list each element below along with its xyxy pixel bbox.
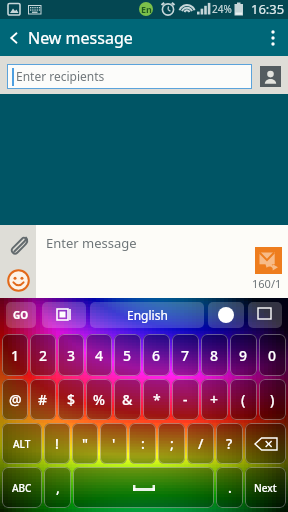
button[interactable] [208, 302, 244, 328]
staticText: : [141, 434, 145, 453]
button[interactable]: ! [44, 423, 70, 464]
staticText: ) [270, 390, 275, 409]
button[interactable]: % [86, 379, 112, 420]
staticText: - [183, 390, 188, 409]
button[interactable]: ) [259, 379, 286, 420]
button[interactable]: , [44, 467, 71, 508]
button[interactable]: . [216, 467, 243, 508]
staticText: ' [112, 434, 116, 453]
button[interactable]: - [172, 379, 199, 420]
button[interactable]: Send [255, 247, 282, 274]
button[interactable]: # [30, 379, 56, 420]
button[interactable]: 2 [30, 334, 56, 376]
button[interactable]: English [90, 302, 204, 328]
button[interactable]: ( [230, 379, 257, 420]
button[interactable]: : [129, 423, 156, 464]
staticText: ; [170, 434, 174, 453]
staticText: ABC [12, 481, 32, 495]
button[interactable]: / [187, 423, 214, 464]
button[interactable]: ; [158, 423, 185, 464]
staticText: En [141, 3, 152, 15]
button[interactable]: ? [216, 423, 243, 464]
button[interactable] [248, 302, 282, 328]
button[interactable]: Add contact [260, 66, 281, 87]
button[interactable]: & [114, 379, 141, 420]
staticText: @ [9, 390, 22, 409]
staticText: 8 [210, 346, 219, 365]
staticText: . [228, 478, 232, 497]
staticText: Enter message [46, 234, 137, 252]
button[interactable]: + [201, 379, 228, 420]
staticText: 6 [152, 346, 161, 365]
staticText: / [198, 434, 204, 453]
staticText: * [153, 390, 161, 409]
button[interactable]: Next [245, 467, 286, 508]
staticText: " [82, 434, 89, 453]
staticText: , [56, 478, 60, 497]
staticText: English [127, 307, 168, 323]
button[interactable]: 4 [86, 334, 112, 376]
button[interactable]: GO [6, 302, 36, 328]
staticText: $ [67, 390, 76, 409]
staticText: % [93, 390, 105, 409]
staticText: 1 [11, 346, 20, 365]
staticText: ALT [13, 437, 31, 451]
staticText: 4 [95, 346, 104, 365]
staticText: 5 [123, 346, 132, 365]
staticText: GO [13, 308, 29, 322]
button[interactable]: ALT [2, 423, 42, 464]
staticText: 3 [67, 346, 76, 365]
button[interactable]: ' [100, 423, 127, 464]
staticText: 160/1 [252, 276, 282, 291]
button[interactable]: 6 [143, 334, 170, 376]
button[interactable]: * [143, 379, 170, 420]
staticText: Enter recipients [16, 68, 105, 84]
button[interactable]: @ [2, 379, 28, 420]
button[interactable]: Back [0, 19, 28, 56]
staticText: 2 [39, 346, 48, 365]
button[interactable]: Enter recipients [7, 64, 252, 89]
button[interactable]: ABC [2, 467, 42, 508]
button[interactable]: 7 [172, 334, 199, 376]
staticText: Next [254, 481, 277, 495]
staticText: New message [28, 27, 258, 49]
staticText: ( [241, 390, 246, 409]
staticText: 16:35 [251, 0, 285, 18]
staticText: 7 [181, 346, 190, 365]
button[interactable]: More options [258, 19, 288, 56]
button[interactable]: Attach [0, 225, 36, 262]
button[interactable] [245, 423, 286, 464]
staticText: 0 [268, 346, 277, 365]
button[interactable] [42, 302, 86, 328]
button[interactable]: 3 [58, 334, 84, 376]
staticText: # [38, 390, 48, 409]
button[interactable]: 8 [201, 334, 228, 376]
button[interactable]: " [72, 423, 98, 464]
staticText: & [122, 390, 133, 409]
button[interactable]: 0 [259, 334, 286, 376]
staticText: 9 [239, 346, 248, 365]
staticText: ! [55, 434, 59, 453]
staticText: ? [226, 434, 233, 453]
button[interactable] [73, 467, 214, 508]
button[interactable]: 9 [230, 334, 257, 376]
button[interactable]: Emoji [0, 262, 36, 298]
staticText: 24% [212, 2, 232, 16]
button[interactable]: $ [58, 379, 84, 420]
button[interactable]: 5 [114, 334, 141, 376]
button[interactable]: 1 [2, 334, 28, 376]
staticText: + [210, 390, 219, 409]
